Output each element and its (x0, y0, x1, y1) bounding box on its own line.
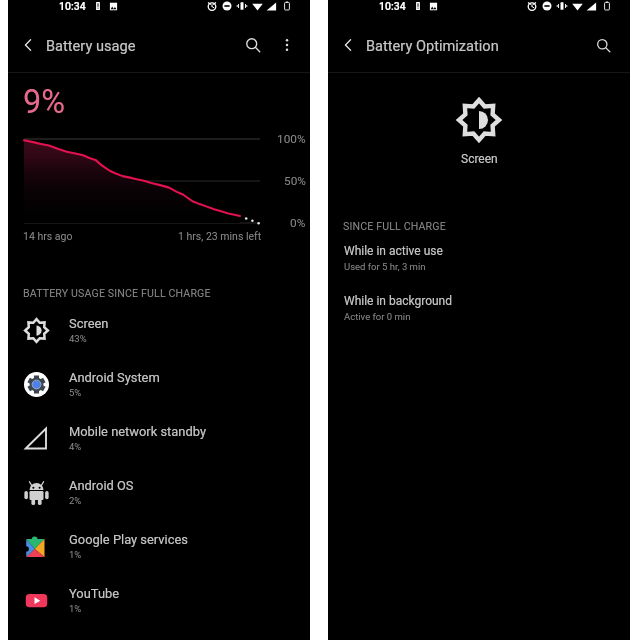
staticText: Mobile network standby (69, 424, 206, 439)
staticText: 43% (69, 333, 87, 344)
staticText: YouTube (69, 586, 120, 601)
staticText: 14 hrs ago (23, 230, 73, 242)
staticText: Battery Optimization (366, 37, 499, 54)
button[interactable]: Search (577, 20, 630, 70)
button[interactable]: YouTube (8, 573, 310, 627)
staticText: 50% (284, 174, 306, 188)
button[interactable]: Android System (8, 357, 310, 411)
staticText: While in active use (344, 244, 443, 258)
button[interactable]: More options (268, 20, 305, 70)
button[interactable]: Back (8, 20, 46, 70)
staticText: Android OS (69, 478, 134, 493)
button[interactable]: Back (328, 20, 366, 70)
staticText: Screen (69, 316, 109, 331)
staticText: 4% (69, 441, 82, 452)
button[interactable]: Android OS (8, 465, 310, 519)
staticText: Screen (461, 152, 498, 166)
staticText: SINCE FULL CHARGE (343, 220, 446, 232)
button[interactable]: Search (237, 20, 268, 70)
staticText: 5% (69, 387, 82, 398)
staticText: BATTERY USAGE SINCE FULL CHARGE (23, 287, 211, 299)
staticText: 1 hrs, 23 mins left (178, 230, 262, 242)
staticText: Active for 0 min (344, 311, 411, 322)
staticText: 2% (69, 495, 82, 506)
staticText: Google Play services (69, 532, 188, 547)
staticText: 9% (23, 83, 66, 121)
button[interactable]: Google Play services (8, 519, 310, 573)
staticText: 1% (69, 603, 82, 614)
staticText: 10:34 (59, 0, 86, 12)
staticText: 10:34 (379, 0, 406, 12)
staticText: 100% (277, 132, 306, 146)
staticText: Battery usage (46, 37, 136, 54)
staticText: Android System (69, 370, 160, 385)
button[interactable]: Screen (8, 303, 310, 357)
staticText: 1% (69, 549, 82, 560)
staticText: While in background (344, 294, 453, 308)
staticText: 0% (290, 216, 306, 230)
staticText: Used for 5 hr, 3 min (344, 261, 426, 272)
button[interactable]: Mobile network standby (8, 411, 310, 465)
